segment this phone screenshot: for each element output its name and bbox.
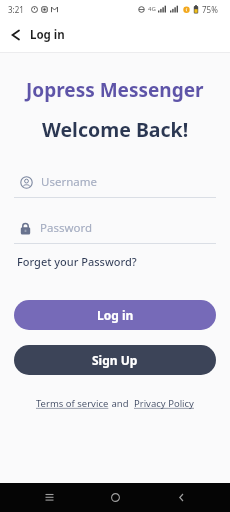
- staticText: Jopress Messenger: [26, 77, 204, 103]
- button[interactable]: Password: [14, 220, 216, 244]
- staticText: 75%: [202, 4, 218, 15]
- staticText: Log in: [97, 307, 134, 323]
- staticText: 3:21: [8, 4, 24, 15]
- button[interactable]: Username: [14, 174, 216, 198]
- staticText: Log in: [30, 27, 65, 43]
- staticText: and: [109, 397, 134, 410]
- button[interactable]: Privacy Policy: [134, 397, 194, 410]
- staticText: Password: [40, 220, 93, 236]
- button[interactable]: [10, 29, 22, 41]
- staticText: Welcome Back!: [42, 116, 189, 143]
- button[interactable]: [16, 483, 82, 512]
- button[interactable]: Sign Up: [14, 345, 216, 375]
- button[interactable]: Log in: [14, 300, 216, 330]
- staticText: 4G: [148, 5, 156, 13]
- button[interactable]: Forget your Password?: [17, 254, 137, 269]
- staticText: Username: [41, 174, 97, 190]
- staticText: Sign Up: [92, 352, 138, 368]
- button[interactable]: [148, 483, 214, 512]
- button[interactable]: Terms of service: [36, 397, 109, 410]
- button[interactable]: [82, 483, 148, 512]
